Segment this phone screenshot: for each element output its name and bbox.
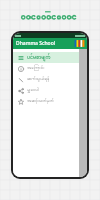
staticText: အဆင့်သတ်မှတ်: [27, 98, 54, 105]
button[interactable]: အကြောင်း: [13, 63, 79, 74]
staticText: မျှဝေပါ: [27, 87, 39, 94]
button[interactable]: ပင်မစာမျက်: [13, 52, 79, 63]
button[interactable]: ဆက်သွယ်ရန်: [13, 74, 79, 85]
button[interactable]: အဆင့်သတ်မှတ်: [13, 96, 79, 107]
staticText: ပင်မစာမျက်: [27, 53, 51, 63]
staticText: ဆက်သွယ်ရန်: [27, 76, 50, 83]
staticText: အကြောင်း: [27, 65, 45, 72]
button[interactable]: Buddhist flag: [74, 39, 85, 48]
button[interactable]: မျှဝေပါ: [13, 85, 79, 96]
staticText: Dhamma School: [16, 40, 56, 47]
